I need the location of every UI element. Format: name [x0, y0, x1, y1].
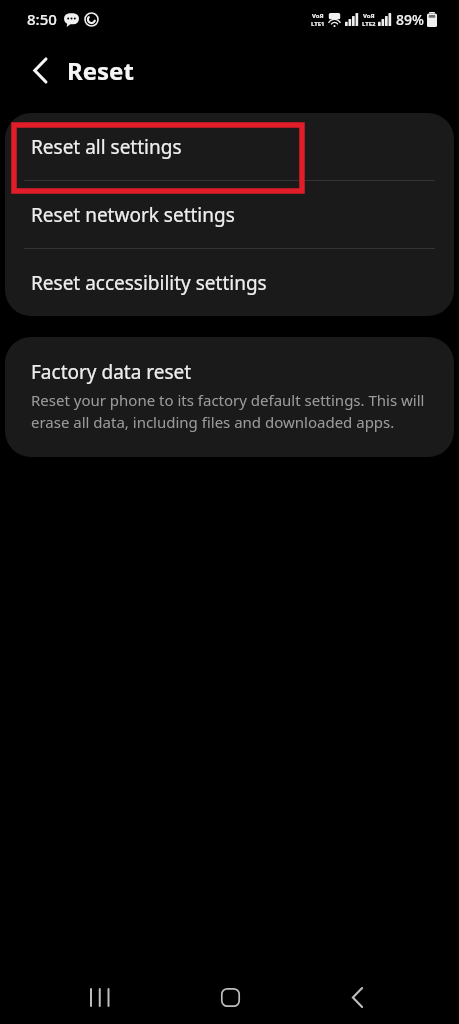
button[interactable]: Back [334, 974, 380, 1020]
button[interactable]: Factory data reset [5, 337, 454, 457]
staticText: LTE1 [311, 20, 325, 28]
staticText: Reset network settings [31, 202, 235, 228]
staticText: VoЯ [363, 12, 375, 20]
button[interactable]: Reset accessibility settings [5, 249, 454, 316]
staticText: 89% [396, 10, 424, 29]
staticText: Reset your phone to its factory default … [31, 390, 428, 433]
button[interactable]: Recent apps [77, 974, 123, 1020]
button[interactable]: Back [18, 48, 62, 92]
staticText: 8:50 [27, 9, 57, 29]
staticText: Reset [67, 54, 134, 87]
button[interactable]: Reset network settings [5, 181, 454, 248]
staticText: Factory data reset [31, 359, 192, 385]
staticText: VoЯ [312, 12, 324, 20]
button[interactable]: Home [207, 974, 253, 1020]
staticText: Reset all settings [31, 134, 182, 160]
staticText: LTE2 [362, 20, 376, 28]
button[interactable]: Reset all settings [5, 113, 454, 180]
staticText: Reset accessibility settings [31, 270, 267, 296]
